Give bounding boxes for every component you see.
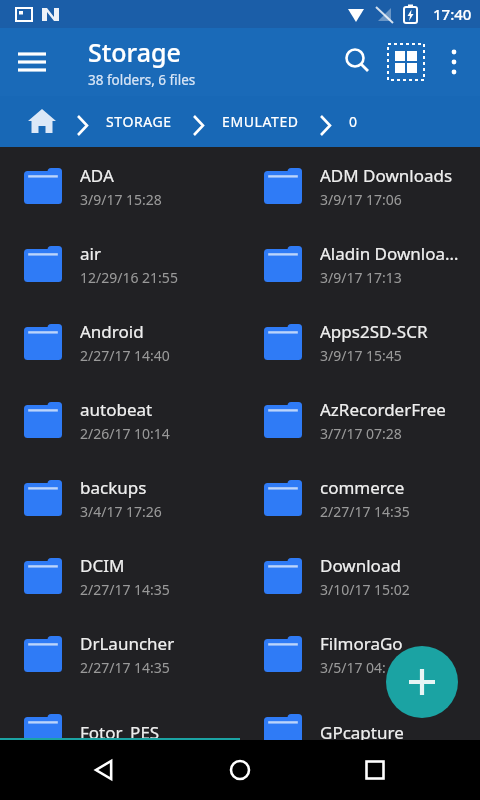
staticText: Download: [320, 554, 401, 577]
button[interactable]: Aladin Downloa…: [240, 225, 480, 303]
staticText: commerce: [320, 476, 405, 499]
button[interactable]: Fotor_PES: [0, 693, 240, 771]
staticText: DrLauncher: [80, 632, 175, 655]
staticText: 0: [349, 112, 358, 131]
button[interactable]: Home: [22, 102, 62, 142]
staticText: GPcapture: [320, 721, 404, 744]
staticText: 2/27/17 14:35: [80, 658, 170, 677]
staticText: 3/5/17 04:: [320, 658, 386, 677]
staticText: Aladin Downloa…: [320, 242, 459, 265]
staticText: Apps2SD-SCR: [320, 320, 428, 343]
staticText: EMULATED: [222, 112, 299, 131]
button[interactable]: air: [0, 225, 240, 303]
staticText: 3/9/17 15:45: [320, 346, 402, 365]
button[interactable]: ADM Downloads: [240, 147, 480, 225]
button[interactable]: More options: [430, 38, 478, 86]
staticText: Storage: [88, 35, 181, 69]
button[interactable]: Back: [75, 740, 135, 800]
button[interactable]: Download: [240, 537, 480, 615]
button[interactable]: EMULATED: [216, 104, 305, 139]
staticText: air: [80, 242, 101, 265]
button[interactable]: STORAGE: [100, 104, 178, 139]
staticText: FilmoraGo: [320, 632, 403, 655]
button[interactable]: Add: [386, 646, 458, 718]
button[interactable]: commerce: [240, 459, 480, 537]
staticText: 38 folders, 6 files: [88, 71, 196, 89]
button[interactable]: AzRecorderFree: [240, 381, 480, 459]
staticText: 2/27/17 14:35: [320, 502, 410, 521]
button[interactable]: backups: [0, 459, 240, 537]
staticText: 2/26/17 10:14: [80, 424, 170, 443]
button[interactable]: FilmoraGo: [240, 615, 480, 693]
staticText: STORAGE: [106, 112, 172, 131]
button[interactable]: Search: [334, 38, 382, 86]
button[interactable]: 0: [343, 104, 364, 139]
button[interactable]: ADA: [0, 147, 240, 225]
staticText: 3/9/17 17:06: [320, 190, 402, 209]
button[interactable]: GPcapture: [240, 693, 480, 771]
staticText: DCIM: [80, 554, 125, 577]
staticText: AzRecorderFree: [320, 398, 446, 421]
button[interactable]: Apps2SD-SCR: [240, 303, 480, 381]
staticText: 2/27/17 14:40: [80, 346, 170, 365]
staticText: Android: [80, 320, 144, 343]
staticText: 3/7/17 07:28: [320, 424, 402, 443]
staticText: 3/10/17 15:02: [320, 580, 410, 599]
button[interactable]: Android: [0, 303, 240, 381]
button[interactable]: Open navigation drawer: [8, 38, 56, 86]
button[interactable]: DrLauncher: [0, 615, 240, 693]
button[interactable]: autobeat: [0, 381, 240, 459]
staticText: 12/29/16 21:55: [80, 268, 178, 287]
staticText: 3/9/17 15:28: [80, 190, 162, 209]
staticText: 2/27/17 14:35: [80, 580, 170, 599]
button[interactable]: DCIM: [0, 537, 240, 615]
staticText: autobeat: [80, 398, 153, 421]
staticText: 3/9/17 17:13: [320, 268, 402, 287]
button[interactable]: Home: [210, 740, 270, 800]
button[interactable]: Switch to grid view: [382, 38, 430, 86]
staticText: Fotor_PES: [80, 721, 160, 744]
staticText: ADM Downloads: [320, 164, 453, 187]
staticText: backups: [80, 476, 147, 499]
staticText: 17:40: [433, 4, 472, 24]
staticText: ADA: [80, 164, 114, 187]
button[interactable]: Recent apps: [345, 740, 405, 800]
staticText: 3/4/17 17:26: [80, 502, 162, 521]
